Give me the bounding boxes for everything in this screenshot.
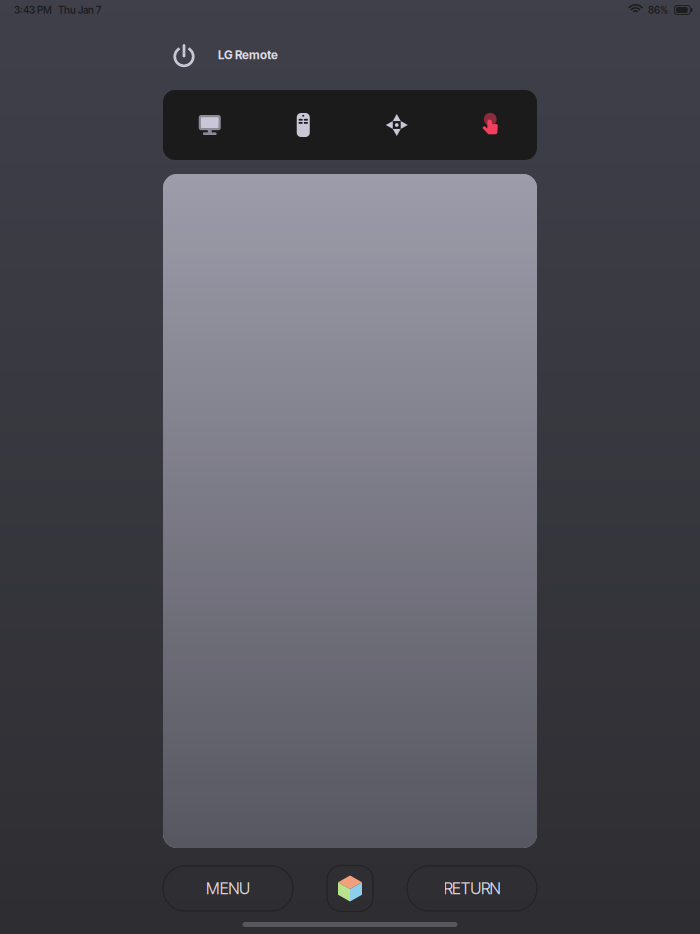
staticText: 3:43 PM xyxy=(14,4,52,16)
button[interactable]: TV xyxy=(163,90,256,160)
button[interactable]: Apps xyxy=(327,865,373,911)
button[interactable]: RETURN xyxy=(407,866,537,911)
button[interactable]: Power xyxy=(162,33,206,77)
staticText: RETURN xyxy=(443,879,500,898)
button[interactable]: Remote xyxy=(256,90,350,160)
button[interactable]: Directional pad xyxy=(350,90,443,160)
button[interactable]: MENU xyxy=(163,866,293,911)
button[interactable]: Touchpad xyxy=(443,90,537,160)
staticText: LG Remote xyxy=(218,48,278,62)
staticText: Thu Jan 7 xyxy=(58,4,101,16)
staticText: MENU xyxy=(206,879,250,898)
staticText: 86% xyxy=(648,4,668,16)
